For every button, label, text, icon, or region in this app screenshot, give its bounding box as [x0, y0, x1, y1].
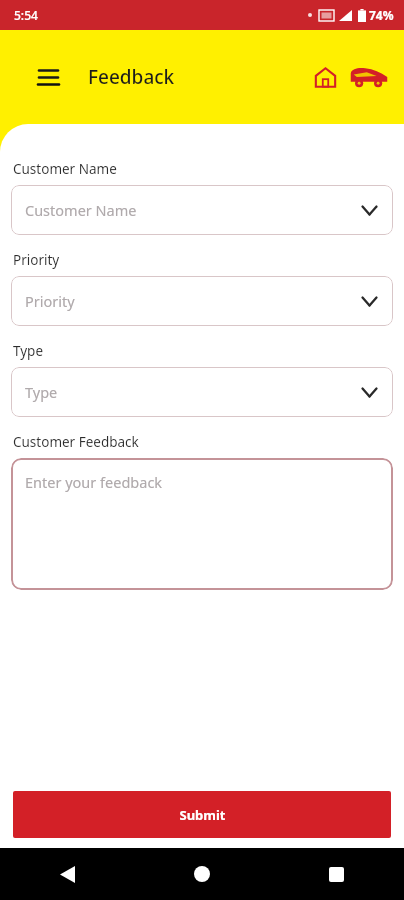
- button[interactable]: Customer Name: [11, 185, 393, 235]
- staticText: Type: [25, 382, 58, 402]
- staticText: Customer Feedback: [13, 433, 139, 451]
- staticText: Priority: [25, 291, 75, 311]
- button[interactable]: Enter your feedback: [11, 458, 393, 590]
- staticText: Customer Name: [25, 200, 137, 220]
- staticText: Enter your feedback: [25, 472, 163, 492]
- staticText: Type: [13, 342, 44, 360]
- staticText: 74%: [369, 7, 394, 23]
- button[interactable]: Open navigation menu: [30, 59, 66, 95]
- button[interactable]: Recent apps: [269, 848, 404, 900]
- button[interactable]: Home: [308, 60, 342, 94]
- staticText: Feedback: [88, 64, 175, 90]
- staticText: Customer Name: [13, 160, 117, 178]
- button[interactable]: Back: [0, 848, 134, 900]
- staticText: Submit: [179, 806, 226, 824]
- button[interactable]: Home: [134, 848, 269, 900]
- staticText: 5:54: [14, 7, 38, 23]
- staticText: Priority: [13, 251, 60, 269]
- button[interactable]: Priority: [11, 276, 393, 326]
- button[interactable]: Submit: [13, 791, 391, 838]
- button[interactable]: Type: [11, 367, 393, 417]
- button[interactable]: Brand logo: [348, 62, 390, 92]
